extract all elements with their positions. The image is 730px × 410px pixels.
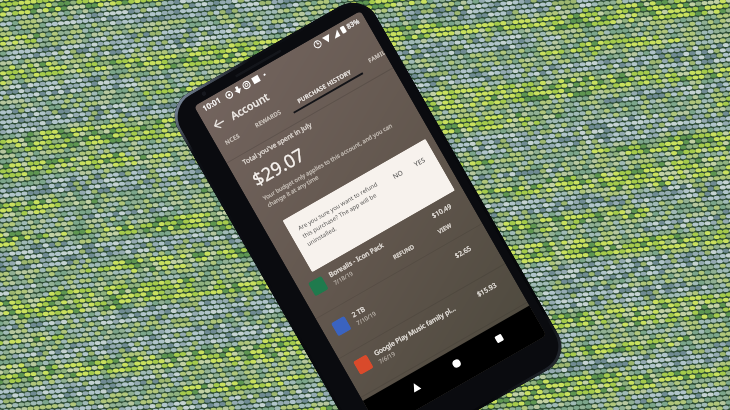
staticText: 83%	[345, 16, 361, 31]
staticText: Are you sure you want to refund this pur…	[296, 180, 388, 248]
button[interactable]: Google Play Music family pl...	[337, 261, 528, 398]
staticText: VIEW	[436, 221, 454, 235]
staticText: PURCHASE HISTORY	[296, 67, 353, 105]
button[interactable]: PURCHASE HISTORY	[285, 58, 363, 113]
button[interactable]: FAMILY	[356, 44, 388, 73]
staticText: $10.49	[430, 201, 453, 220]
button[interactable]: Home	[441, 348, 471, 378]
button[interactable]: NO	[384, 161, 412, 187]
staticText: Account	[227, 89, 272, 122]
staticText: 2 TB	[350, 304, 367, 319]
staticText: Borealis - Icon Pack	[327, 240, 386, 279]
button[interactable]: 2 TB	[315, 222, 505, 359]
staticText: FAMILY	[366, 48, 386, 65]
staticText: 7/18/19	[332, 269, 355, 287]
button[interactable]: Back	[204, 109, 233, 138]
staticText: NO	[391, 168, 405, 181]
button[interactable]: REWARDS	[243, 99, 293, 138]
button[interactable]: Back	[400, 372, 430, 402]
staticText: $15.93	[475, 280, 498, 299]
staticText: Your budget only applies to this account…	[261, 121, 398, 209]
staticText: 7/10/19	[355, 309, 378, 327]
button[interactable]: VIEW	[436, 221, 454, 235]
staticText: Total you've spent in July	[241, 120, 314, 167]
staticText: REWARDS	[253, 107, 283, 129]
staticText: YES	[412, 155, 427, 169]
button[interactable]: Recent apps	[484, 324, 514, 353]
staticText: $29.07	[247, 142, 309, 192]
staticText: $2.65	[453, 243, 473, 260]
staticText: 10:01	[200, 95, 223, 114]
staticText: REFUND	[391, 242, 416, 261]
staticText: Google Play Music family pl...	[372, 303, 457, 358]
button[interactable]: REFUND	[391, 242, 416, 261]
button[interactable]: NCES	[214, 123, 250, 154]
button[interactable]: Borealis - Icon Pack	[292, 182, 483, 319]
staticText: NCES	[223, 131, 242, 146]
staticText: 7/6/19	[377, 349, 397, 365]
button[interactable]: YES	[405, 149, 434, 175]
